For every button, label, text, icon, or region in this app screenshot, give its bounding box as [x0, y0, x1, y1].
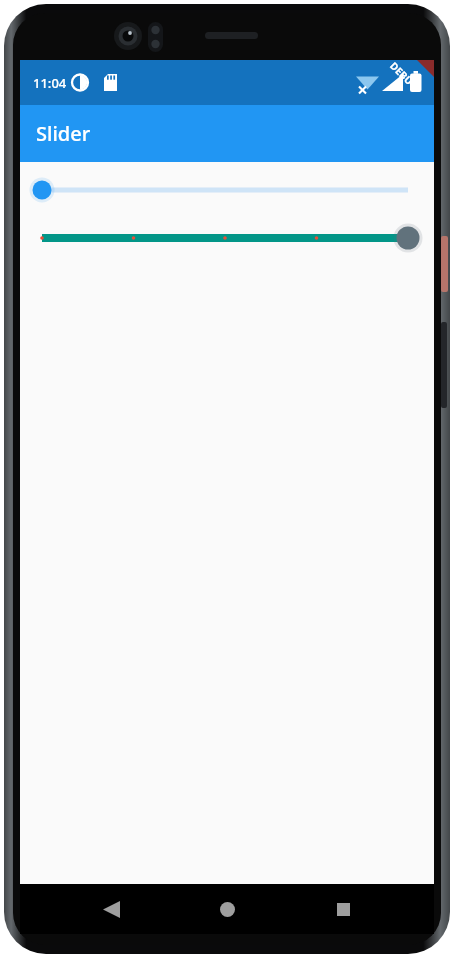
- staticText: Slider: [36, 120, 91, 147]
- button[interactable]: Recent apps: [318, 884, 368, 934]
- button[interactable]: Home: [202, 884, 252, 934]
- staticText: 11:04: [33, 74, 67, 92]
- button[interactable]: Continuous slider: [20, 162, 434, 204]
- staticText: DEBUG: [387, 59, 422, 93]
- button[interactable]: Discrete slider with divisions: [20, 216, 434, 258]
- button[interactable]: Back: [86, 884, 136, 934]
